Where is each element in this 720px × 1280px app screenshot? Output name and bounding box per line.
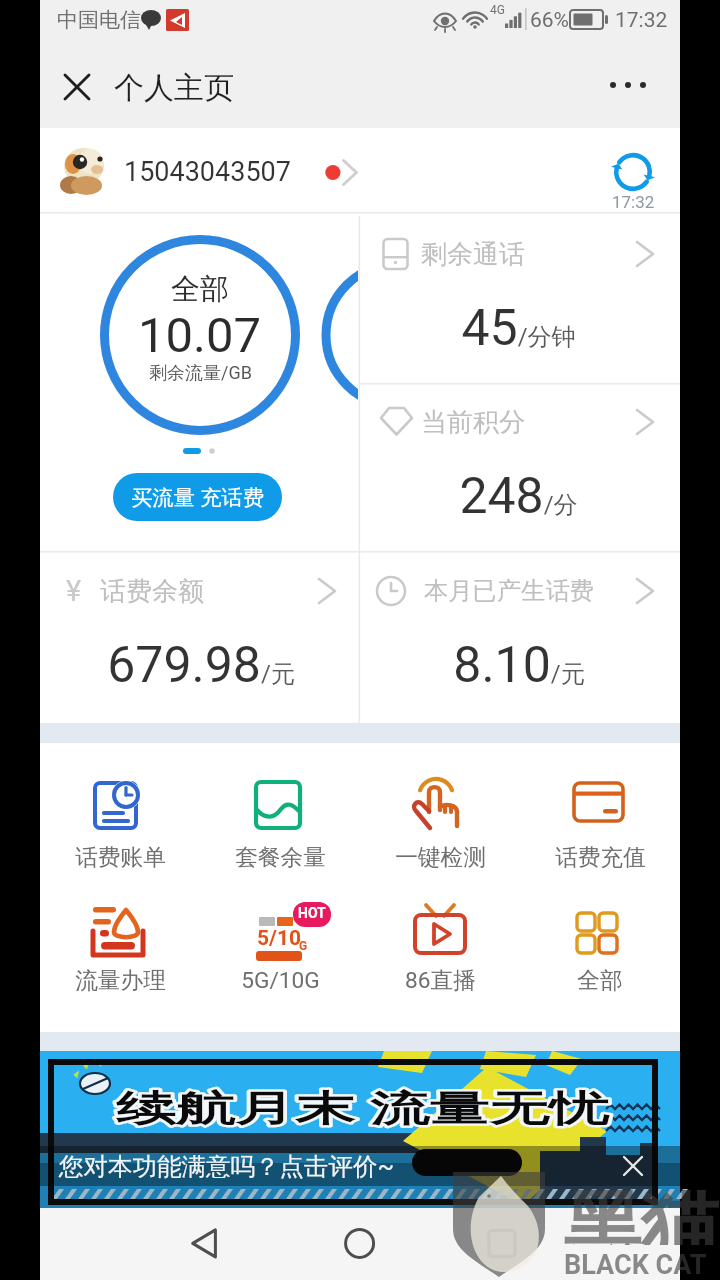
staticText: 一键检测: [395, 843, 486, 872]
staticText: 5G/10G: [241, 967, 320, 994]
staticText: 中国电信: [57, 7, 141, 33]
staticText: 话费账单: [75, 843, 166, 872]
staticText: 黑猫: [563, 1179, 719, 1245]
staticText: 全部: [577, 966, 623, 995]
button[interactable]: 主页: [332, 1215, 388, 1271]
staticText: 话费充值: [555, 843, 646, 872]
button[interactable]: [200, 750, 360, 868]
button[interactable]: [200, 877, 360, 995]
staticText: 5/10: [257, 926, 301, 951]
staticText: 剩余通话: [421, 238, 525, 270]
staticText: 流量办理: [75, 966, 166, 995]
button[interactable]: 刷新: [590, 138, 676, 214]
staticText: 剩余流量/GB: [149, 362, 252, 385]
button[interactable]: [40, 1146, 680, 1186]
staticText: 续航月末 流量无忧: [116, 1086, 609, 1131]
staticText: 套餐余量: [235, 843, 326, 872]
button[interactable]: [359, 216, 680, 384]
button[interactable]: [359, 384, 680, 552]
button[interactable]: [360, 750, 520, 868]
button[interactable]: 关闭: [58, 68, 96, 106]
staticText: 4G: [490, 3, 505, 17]
button[interactable]: 买流量 充话费: [113, 473, 282, 521]
staticText: 个人主页: [114, 69, 234, 105]
button[interactable]: 关闭提示: [612, 1146, 654, 1186]
staticText: HOT: [298, 905, 326, 921]
staticText: 86直播: [405, 966, 476, 995]
button[interactable]: 返回: [190, 1215, 246, 1271]
staticText: 17:32: [615, 8, 668, 33]
button[interactable]: [359, 552, 680, 722]
staticText: 15043043507: [124, 156, 291, 188]
staticText: G: [299, 939, 308, 953]
staticText: 您对本功能满意吗？点击评价~: [59, 1151, 395, 1182]
staticText: 10.07: [138, 307, 262, 363]
staticText: 全部: [171, 271, 229, 308]
button[interactable]: [520, 877, 680, 995]
button[interactable]: [520, 750, 680, 868]
staticText: 话费余额: [100, 575, 204, 607]
button[interactable]: [40, 877, 200, 995]
button[interactable]: [360, 877, 520, 995]
button[interactable]: [40, 128, 680, 212]
staticText: 8.10/元: [453, 636, 585, 695]
button[interactable]: [40, 750, 200, 868]
staticText: 679.98/元: [107, 636, 295, 695]
staticText: 45/分钟: [461, 299, 576, 358]
button[interactable]: [40, 552, 359, 722]
button[interactable]: [40, 1051, 680, 1208]
staticText: 248/分: [459, 467, 578, 526]
button[interactable]: [40, 215, 358, 465]
staticText: ¥: [66, 574, 82, 608]
staticText: 17:32: [612, 192, 655, 212]
staticText: 66%: [530, 8, 569, 33]
staticText: 当前积分: [421, 406, 525, 438]
button[interactable]: 最近任务: [474, 1215, 530, 1271]
staticText: 续航月末 流量无忧: [116, 1086, 609, 1131]
button[interactable]: 更多: [595, 66, 661, 106]
staticText: 本月已产生话费: [424, 576, 595, 607]
staticText: 买流量 充话费: [131, 484, 265, 511]
staticText: BLACK CAT: [564, 1249, 707, 1277]
